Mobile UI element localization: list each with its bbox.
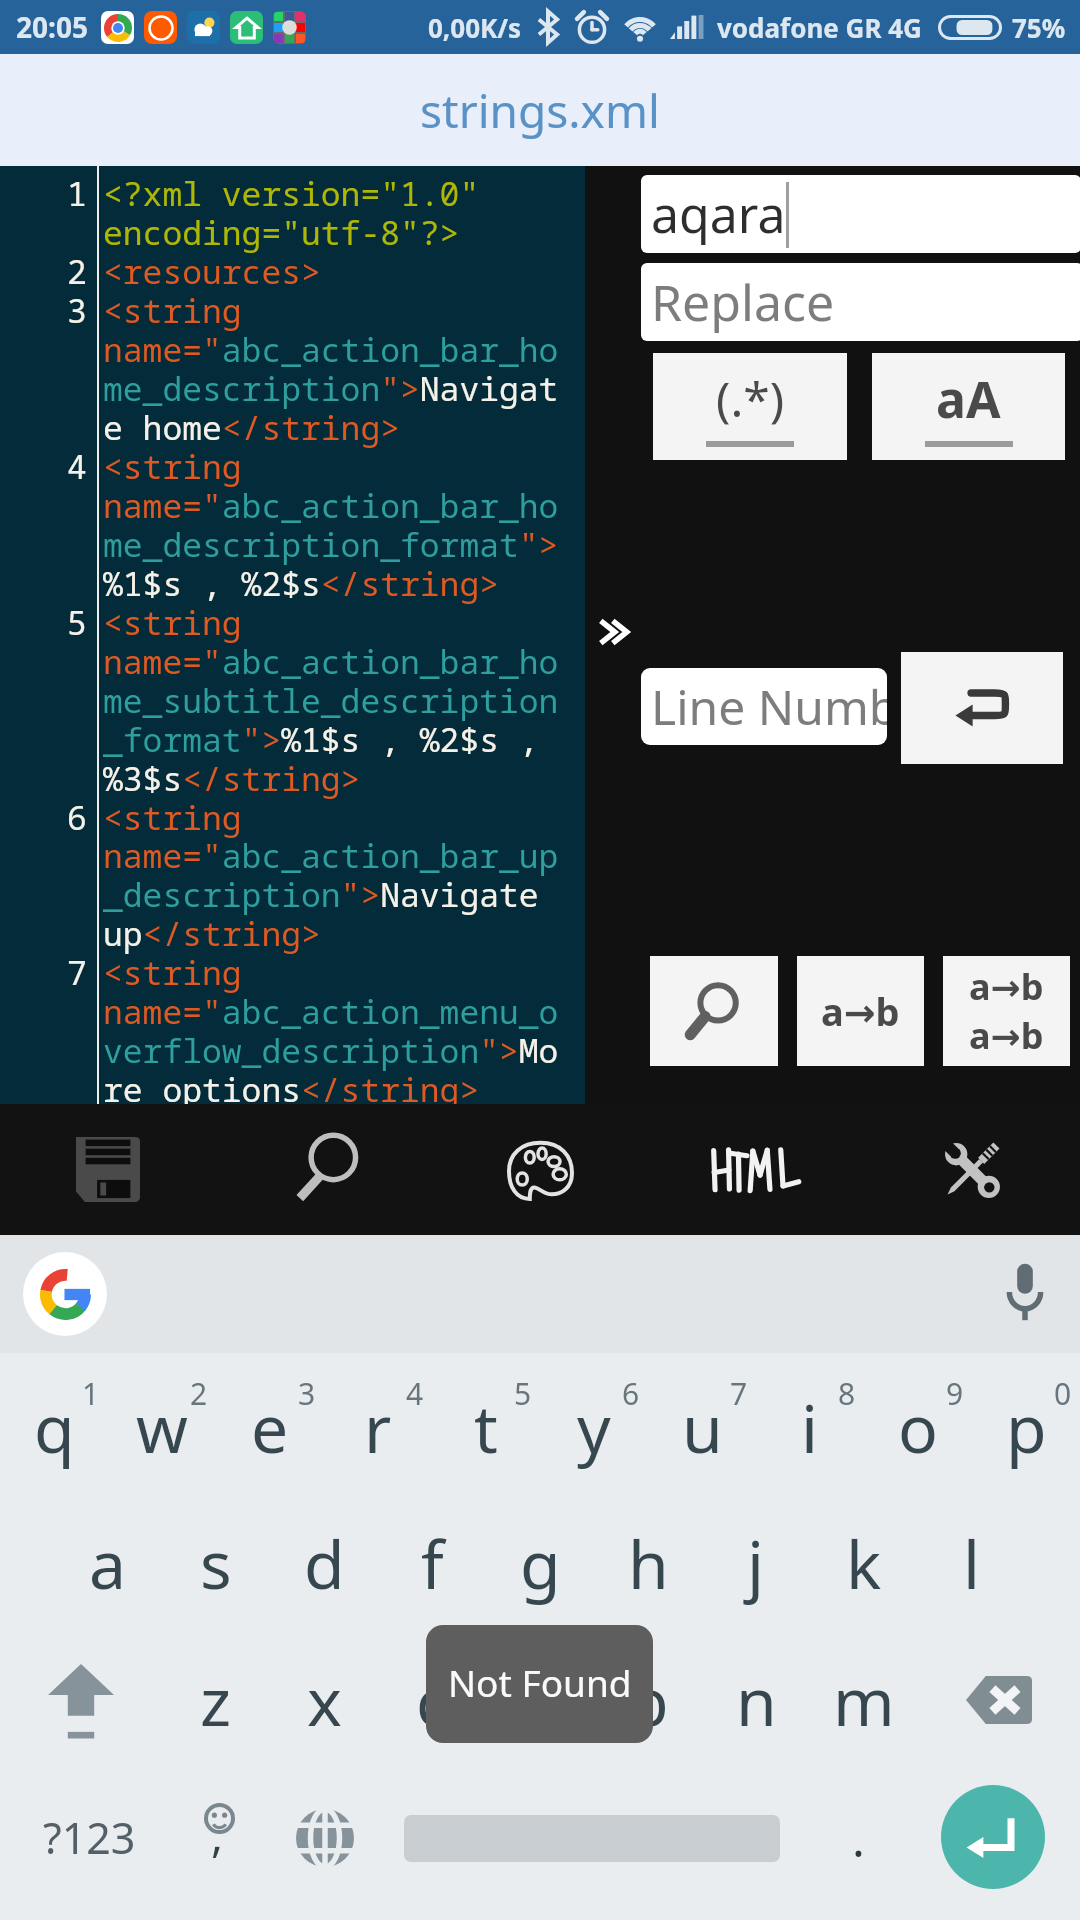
- button[interactable]: x: [270, 1619, 378, 1743]
- staticText: vodafone GR 4G: [717, 10, 922, 45]
- button[interactable]: Replace: [641, 263, 1080, 341]
- staticText: <string: [103, 444, 242, 489]
- staticText: 6: [622, 1373, 640, 1414]
- button[interactable]: m: [810, 1619, 918, 1743]
- staticText: v: [523, 1655, 557, 1745]
- staticText: name="abc_action_menu_o: [103, 989, 559, 1034]
- staticText: 0: [1054, 1373, 1072, 1414]
- staticText: up</string>: [103, 911, 321, 956]
- button[interactable]: Emoji: [174, 1743, 264, 1920]
- staticText: me_description_format">: [103, 522, 559, 567]
- button[interactable]: Match case: [872, 353, 1065, 460]
- button[interactable]: n: [702, 1619, 810, 1743]
- button[interactable]: 7: [648, 1353, 756, 1485]
- staticText: t: [474, 1382, 498, 1472]
- button[interactable]: c: [378, 1619, 486, 1743]
- button[interactable]: .: [808, 1743, 908, 1920]
- staticText: name="abc_action_bar_up: [103, 833, 559, 878]
- button[interactable]: 3: [216, 1353, 324, 1485]
- staticText: <string: [103, 600, 242, 645]
- staticText: u: [682, 1382, 723, 1472]
- button[interactable]: 1: [0, 1353, 108, 1485]
- button[interactable]: HTML preview: [648, 1104, 864, 1235]
- staticText: 8: [838, 1373, 856, 1414]
- button[interactable]: Regex: [653, 353, 847, 460]
- button[interactable]: v: [486, 1619, 594, 1743]
- button[interactable]: 6: [540, 1353, 648, 1485]
- button[interactable]: 5: [432, 1353, 540, 1485]
- button[interactable]: 4: [324, 1353, 432, 1485]
- staticText: 3: [298, 1373, 316, 1414]
- button[interactable]: Save: [0, 1104, 216, 1235]
- button[interactable]: Shift: [0, 1619, 162, 1743]
- button[interactable]: Replace: [797, 956, 924, 1066]
- staticText: strings.xml: [420, 79, 660, 142]
- staticText: b: [628, 1655, 669, 1745]
- button[interactable]: Enter: [941, 1785, 1045, 1889]
- staticText: _description">Navigate: [103, 872, 539, 917]
- button[interactable]: Go to line: [901, 652, 1063, 764]
- button[interactable]: l: [918, 1485, 1026, 1619]
- button[interactable]: 8: [756, 1353, 864, 1485]
- staticText: d: [304, 1518, 345, 1608]
- button[interactable]: Space: [380, 1743, 804, 1920]
- button[interactable]: j: [702, 1485, 810, 1619]
- button[interactable]: Line Numb: [641, 668, 887, 745]
- staticText: z: [200, 1655, 232, 1745]
- button[interactable]: Theme: [432, 1104, 648, 1235]
- staticText: y: [577, 1382, 611, 1472]
- button[interactable]: g: [486, 1485, 594, 1619]
- staticText: a→b: [821, 985, 900, 1037]
- button[interactable]: a: [54, 1485, 162, 1619]
- staticText: h: [628, 1518, 669, 1608]
- button[interactable]: Tools: [864, 1104, 1080, 1235]
- staticText: me_description">Navigat: [103, 366, 559, 411]
- button[interactable]: d: [270, 1485, 378, 1619]
- button[interactable]: Voice input: [988, 1255, 1062, 1329]
- staticText: a→b: [969, 1011, 1044, 1060]
- staticText: %1$s , %2$s</string>: [103, 561, 499, 606]
- staticText: <string: [103, 795, 242, 840]
- button[interactable]: Search: [216, 1104, 432, 1235]
- staticText: aqara: [651, 180, 786, 248]
- staticText: 75%: [1012, 10, 1066, 45]
- staticText: <resources>: [103, 249, 321, 294]
- button[interactable]: Backspace: [918, 1619, 1080, 1743]
- staticText: _format">%1$s , %2$s ,: [103, 717, 539, 762]
- button[interactable]: Change language: [276, 1743, 374, 1920]
- staticText: s: [200, 1518, 232, 1608]
- button[interactable]: f: [378, 1485, 486, 1619]
- staticText: w: [136, 1382, 188, 1472]
- button[interactable]: z: [162, 1619, 270, 1743]
- button[interactable]: s: [162, 1485, 270, 1619]
- staticText: Not Found: [448, 1657, 632, 1707]
- staticText: q: [34, 1382, 75, 1472]
- staticText: 5: [67, 600, 87, 645]
- staticText: ?123: [43, 1808, 136, 1867]
- button[interactable]: 9: [864, 1353, 972, 1485]
- staticText: f: [421, 1518, 444, 1608]
- staticText: .: [852, 1806, 865, 1871]
- staticText: p: [1006, 1382, 1047, 1472]
- staticText: n: [736, 1655, 777, 1745]
- button[interactable]: 0: [972, 1353, 1080, 1485]
- button[interactable]: h: [594, 1485, 702, 1619]
- button[interactable]: 2: [108, 1353, 216, 1485]
- staticText: e home</string>: [103, 405, 400, 450]
- staticText: <?xml version="1.0": [103, 171, 480, 216]
- staticText: 2: [67, 249, 87, 294]
- staticText: j: [747, 1518, 765, 1608]
- button[interactable]: Expand panel: [596, 612, 636, 652]
- button[interactable]: Google search: [23, 1252, 107, 1336]
- button[interactable]: aqara: [641, 175, 1080, 253]
- staticText: c: [416, 1655, 448, 1745]
- button[interactable]: Find: [650, 956, 778, 1066]
- button[interactable]: Replace all: [943, 956, 1070, 1066]
- button[interactable]: b: [594, 1619, 702, 1743]
- button[interactable]: k: [810, 1485, 918, 1619]
- staticText: name="abc_action_bar_ho: [103, 639, 559, 684]
- staticText: Line Numb: [651, 674, 887, 739]
- staticText: %3$s</string>: [103, 756, 361, 801]
- staticText: o: [898, 1382, 938, 1472]
- button[interactable]: ?123: [20, 1743, 152, 1920]
